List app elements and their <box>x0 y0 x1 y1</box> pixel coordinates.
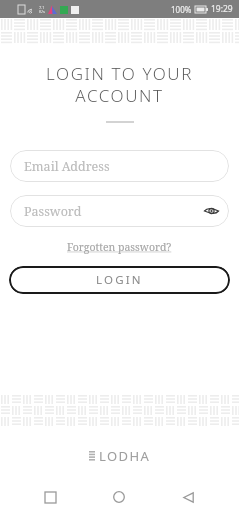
button[interactable]: Password <box>10 195 229 227</box>
button[interactable]: Home <box>101 482 137 512</box>
button[interactable]: Email Address <box>10 150 229 182</box>
button[interactable]: Show password <box>201 201 221 221</box>
button[interactable]: Back <box>170 482 206 512</box>
staticText: 19:29 <box>211 3 233 15</box>
staticText: LOGIN TO YOUR ACCOUNT <box>22 62 217 107</box>
button[interactable]: LOGIN <box>9 266 230 294</box>
staticText: 7.1 K/s <box>39 5 45 14</box>
button[interactable]: Recent apps <box>32 482 68 512</box>
staticText: Password <box>24 203 82 220</box>
staticText: Email Address <box>24 158 110 175</box>
staticText: 100% <box>171 4 192 15</box>
button[interactable]: Forgotten password? <box>61 238 178 256</box>
staticText: LOGIN <box>96 272 143 288</box>
staticText: LODHA <box>99 447 151 465</box>
staticText: Forgotten password? <box>67 240 172 254</box>
